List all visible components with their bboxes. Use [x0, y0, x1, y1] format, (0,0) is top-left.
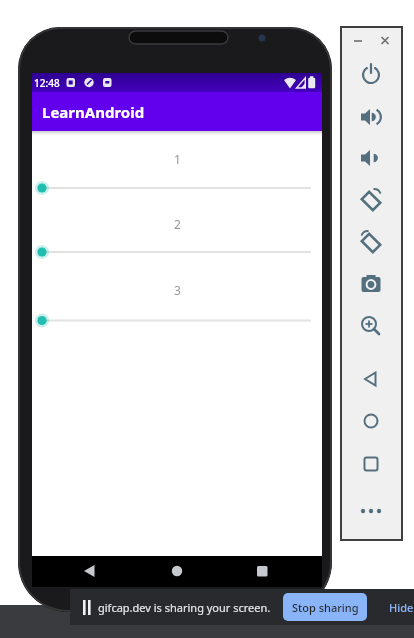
button[interactable]: [356, 185, 386, 215]
button[interactable]: [74, 556, 104, 587]
staticText: Stop sharing: [292, 600, 359, 615]
button[interactable]: [356, 227, 386, 257]
button[interactable]: [356, 59, 386, 89]
button[interactable]: Stop sharing: [283, 593, 367, 621]
button[interactable]: [356, 406, 386, 436]
staticText: gifcap.dev is sharing your screen.: [98, 600, 271, 615]
button[interactable]: [35, 308, 318, 332]
button[interactable]: [349, 32, 367, 50]
staticText: 3: [174, 282, 181, 298]
button[interactable]: [356, 102, 386, 132]
button[interactable]: [35, 176, 318, 200]
button[interactable]: [356, 311, 386, 341]
button[interactable]: [356, 449, 386, 479]
staticText: 1: [174, 151, 181, 167]
staticText: 12:48: [34, 76, 60, 90]
button[interactable]: [356, 143, 386, 173]
button[interactable]: [356, 496, 386, 526]
button[interactable]: [162, 556, 192, 587]
button[interactable]: [356, 364, 386, 394]
button[interactable]: [35, 240, 318, 264]
button[interactable]: [247, 556, 277, 587]
staticText: 2: [174, 216, 181, 232]
button[interactable]: [356, 269, 386, 299]
button[interactable]: Hide: [389, 600, 414, 615]
button[interactable]: [376, 32, 394, 50]
staticText: LearnAndroid: [42, 102, 145, 122]
